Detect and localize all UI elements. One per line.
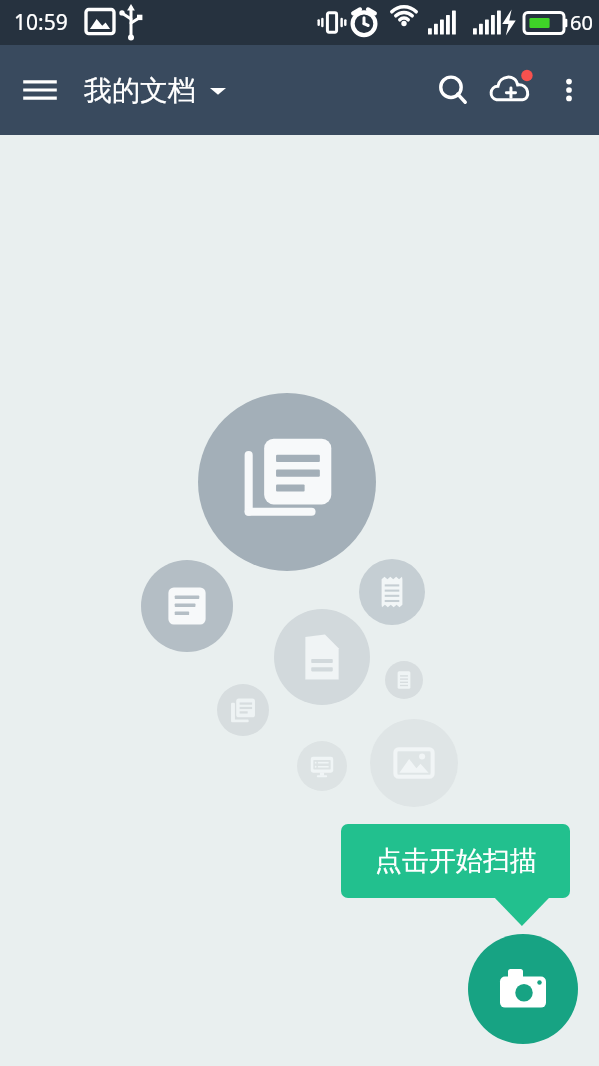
button[interactable]: 点击开始扫描 [341, 824, 570, 898]
button[interactable]: Upload to cloud [481, 59, 543, 121]
button[interactable]: Scan with camera [468, 934, 578, 1044]
button[interactable]: Search [425, 62, 481, 118]
button[interactable]: 我的文档 [84, 73, 226, 108]
button[interactable]: More options [543, 64, 595, 116]
staticText: 10:59 [14, 8, 68, 37]
button[interactable]: Menu [14, 64, 66, 116]
staticText: 点击开始扫描 [375, 844, 537, 878]
staticText: 60 [570, 9, 593, 36]
staticText: 我的文档 [84, 73, 196, 108]
